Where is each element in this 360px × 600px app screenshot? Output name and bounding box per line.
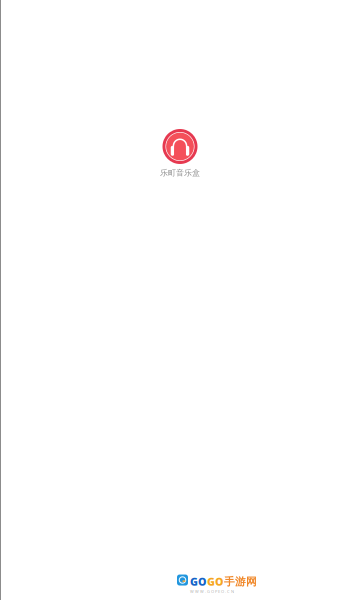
staticText: GO (190, 574, 207, 589)
staticText: GO (207, 574, 224, 589)
button[interactable]: 乐町音乐盒 (160, 129, 200, 178)
staticText: W W W . G O P E O . C N (190, 589, 234, 594)
button[interactable]: GOGO手游网 WWW.GOPEO.CN (177, 574, 257, 594)
staticText: 手游网 (224, 575, 257, 588)
staticText: 乐町音乐盒 (160, 168, 200, 178)
